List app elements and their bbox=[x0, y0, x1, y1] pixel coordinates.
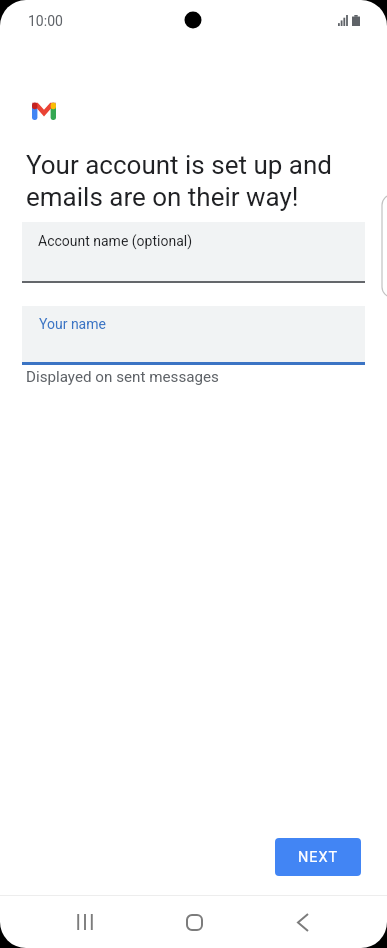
staticText: 10:00 bbox=[28, 13, 63, 29]
staticText: Your name bbox=[39, 316, 106, 332]
staticText: Displayed on sent messages bbox=[26, 368, 219, 386]
button[interactable]: Recent apps bbox=[49, 896, 121, 948]
staticText: Your account is set up and emails are on… bbox=[26, 150, 358, 212]
button[interactable]: NEXT bbox=[275, 838, 361, 876]
staticText: NEXT bbox=[298, 849, 338, 866]
button[interactable]: Your name bbox=[22, 306, 365, 364]
button[interactable]: Home bbox=[158, 896, 230, 948]
button[interactable]: Account name (optional) bbox=[22, 222, 365, 283]
staticText: Account name (optional) bbox=[38, 233, 193, 249]
button[interactable]: Back bbox=[267, 896, 339, 948]
